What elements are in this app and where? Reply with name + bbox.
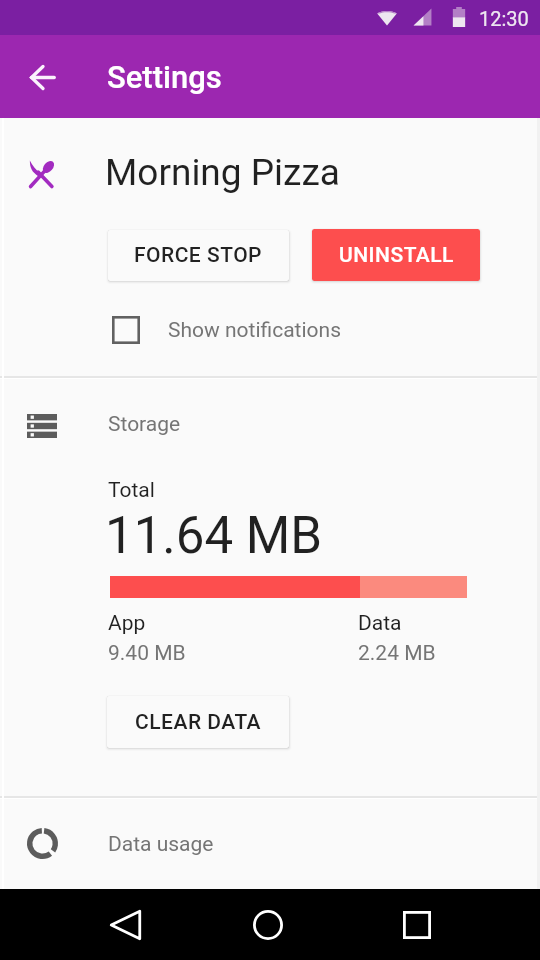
button[interactable]: Storage <box>0 379 540 469</box>
button[interactable]: Data usage <box>0 799 540 889</box>
button[interactable]: Show notifications <box>0 305 540 355</box>
staticText: 12:30 <box>479 7 529 30</box>
button[interactable]: Home <box>242 899 294 951</box>
button[interactable]: Navigate up <box>14 49 70 105</box>
staticText: Data <box>358 611 402 636</box>
staticText: Total <box>108 478 155 503</box>
staticText: UNINSTALL <box>339 243 454 268</box>
staticText: Show notifications <box>168 318 341 343</box>
button[interactable]: Back <box>99 899 151 951</box>
staticText: FORCE STOP <box>134 243 263 268</box>
button[interactable]: UNINSTALL <box>312 229 480 281</box>
staticText: Storage <box>108 412 181 437</box>
staticText: CLEAR DATA <box>135 710 262 735</box>
button[interactable]: Recent apps <box>391 899 443 951</box>
staticText: 2.24 MB <box>358 641 436 666</box>
staticText: Settings <box>107 59 222 95</box>
button[interactable]: CLEAR DATA <box>107 696 289 748</box>
staticText: App <box>108 611 146 636</box>
staticText: 9.40 MB <box>108 641 186 666</box>
staticText: 11.64 MB <box>105 506 323 566</box>
button[interactable]: FORCE STOP <box>108 230 289 281</box>
staticText: Morning Pizza <box>105 151 340 194</box>
staticText: Data usage <box>108 832 214 857</box>
